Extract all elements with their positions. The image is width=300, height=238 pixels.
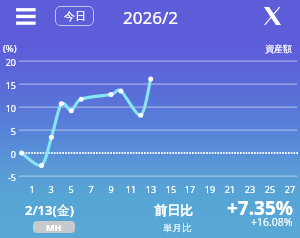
staticText: 15 [161, 183, 181, 195]
staticText: 20 [0, 56, 16, 68]
staticText: 25 [260, 183, 280, 195]
staticText: 27 [280, 183, 300, 195]
staticText: 23 [240, 183, 260, 195]
staticText: 1 [22, 183, 42, 195]
staticText: 7 [81, 183, 101, 195]
staticText: 13 [141, 183, 161, 195]
staticText: -5 [0, 171, 16, 183]
staticText: 11 [121, 183, 141, 195]
staticText: 2026/2 [123, 6, 178, 29]
button[interactable]: 今日 [55, 6, 94, 26]
button[interactable]: Open navigation menu [8, 0, 44, 34]
staticText: 2/13(金) [25, 201, 74, 219]
staticText: 5 [61, 183, 81, 195]
staticText: 0 [0, 148, 16, 160]
staticText: +16.08% [251, 215, 293, 229]
staticText: 資産額 [265, 43, 292, 54]
staticText: MH [46, 221, 62, 233]
staticText: 前日比 [154, 202, 193, 218]
staticText: 19 [200, 183, 220, 195]
staticText: (%) [3, 42, 17, 55]
staticText: 3 [41, 183, 61, 195]
staticText: 17 [180, 183, 200, 195]
staticText: 21 [220, 183, 240, 195]
staticText: 今日 [64, 9, 86, 23]
button[interactable]: Open X [256, 0, 288, 32]
staticText: 15 [0, 79, 16, 91]
staticText: 9 [101, 183, 121, 195]
staticText: 10 [0, 102, 16, 114]
staticText: 単月比 [163, 222, 192, 233]
staticText: +7.35% [227, 195, 293, 215]
staticText: 5 [0, 125, 16, 137]
button[interactable]: MH [33, 221, 75, 233]
